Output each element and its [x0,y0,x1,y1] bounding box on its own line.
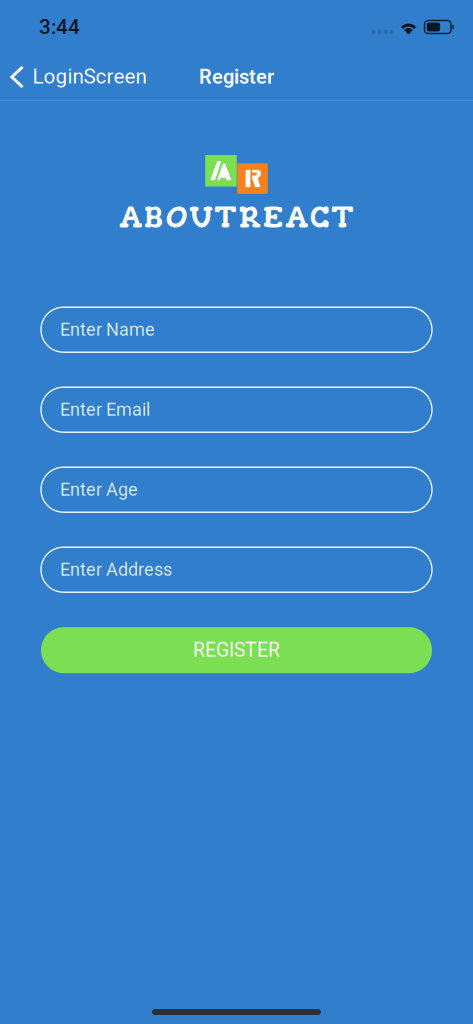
staticText: A [119,199,141,235]
staticText: 3:44 [39,15,80,39]
staticText: C [309,199,329,235]
staticText: T [214,199,236,235]
staticText: Enter Email [60,399,150,420]
button[interactable]: REGISTER [41,627,432,673]
staticText: U [189,199,212,235]
staticText: LoginScreen [32,64,146,89]
staticText: Enter Address [60,559,172,580]
button[interactable]: Enter Age [41,467,432,512]
staticText: Enter Age [60,479,138,500]
button[interactable]: Enter Address [41,547,432,592]
button[interactable]: LoginScreen [0,60,154,94]
staticText: R [238,199,260,235]
staticText: T [331,199,353,235]
button[interactable]: Enter Name [41,307,432,352]
staticText: E [262,199,283,235]
staticText: REGISTER [193,639,280,662]
staticText: Register [199,65,274,89]
staticText: A [285,199,307,235]
staticText: B [143,199,163,235]
staticText: Enter Name [60,319,155,340]
staticText: O [165,199,187,235]
button[interactable]: Enter Email [41,387,432,432]
